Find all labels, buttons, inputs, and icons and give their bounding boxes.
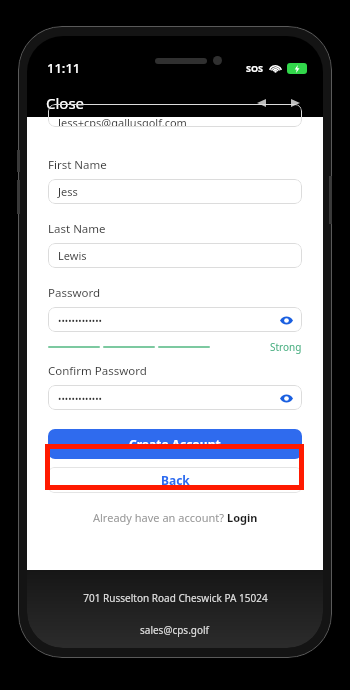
staticText: SOS [246,62,264,74]
staticText: Jess+cps@gallusgolf.com [58,115,187,127]
button[interactable]: ••••••••••••• [48,385,302,410]
staticText: Jess [58,184,78,199]
staticText: Already have an account? [93,510,227,525]
staticText: ••••••••••••• [58,314,102,326]
staticText: Lewis [58,248,87,263]
button[interactable]: Back [249,91,273,115]
staticText: Strong [270,340,302,354]
staticText: ••••••••••••• [58,392,102,404]
button[interactable]: sales@cps.golf [140,623,210,637]
button[interactable]: Lewis [48,243,302,268]
button[interactable]: ••••••••••••• [48,307,302,332]
staticText: Back [161,472,190,488]
button[interactable]: Jess [48,179,302,204]
staticText: 701 Russelton Road Cheswick PA 15024 [83,591,268,605]
button[interactable]: Close [46,93,85,113]
staticText: Login [227,510,258,525]
staticText: Password [48,285,101,301]
button[interactable]: Create Account [48,429,302,459]
staticText: Create Account [129,436,221,452]
button[interactable]: Back [48,467,302,493]
button[interactable]: Show password [278,312,294,328]
staticText: Confirm Password [48,363,147,379]
staticText: First Name [48,157,107,173]
button[interactable]: Forward [283,91,307,115]
button[interactable]: Already have an account? [48,510,302,525]
staticText: 11:11 [47,59,81,77]
staticText: Last Name [48,221,106,237]
button[interactable]: Show password [278,390,294,406]
